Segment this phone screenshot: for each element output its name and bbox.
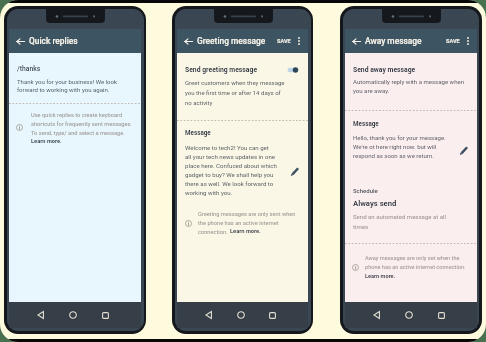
staticText: SAVE [446,38,460,45]
button[interactable]: Back [179,29,197,53]
staticText: Learn more. [230,228,261,235]
staticText: Always send [353,199,397,208]
button[interactable]: More options [461,29,474,53]
staticText: Learn more. [31,138,62,145]
button[interactable]: Recents [96,306,114,324]
button[interactable]: More options [292,29,305,53]
staticText: Learn more. [365,273,396,280]
button[interactable]: SAVE [444,35,462,48]
staticText: Use quick replies to create keyboard sho… [31,112,132,136]
button[interactable]: Back [11,29,29,53]
staticText: Schedule [353,187,378,194]
staticText: Greeting message [197,36,266,46]
staticText: Quick replies [29,36,78,46]
staticText: Send away message [353,66,416,74]
staticText: Away messages are only set when the phon… [365,255,466,270]
staticText: Greet customers when they message you th… [185,79,285,106]
button[interactable]: Recents [263,306,281,324]
button[interactable]: Home [64,306,82,324]
button[interactable]: Recents [432,306,450,324]
button[interactable]: Toggle greeting message [287,63,302,77]
button[interactable]: Home [232,306,250,324]
staticText: Welcome to tech2! You can get all your t… [185,144,277,197]
button[interactable]: Edit message [456,142,472,158]
button[interactable]: Edit message [287,163,303,179]
staticText: Greeting messages are only sent when the… [198,211,296,235]
button[interactable]: Back [32,306,50,324]
button[interactable]: Back [200,306,218,324]
staticText: SAVE [277,38,291,45]
staticText: Automatically reply with a message when … [353,78,465,95]
button[interactable]: SAVE [275,35,293,48]
button[interactable]: Back [368,306,386,324]
staticText: Send greeting message [185,66,258,74]
staticText: Away message [365,36,422,46]
button[interactable]: Home [400,306,418,324]
button[interactable]: Back [347,29,365,53]
staticText: Send an automated message at all times [353,213,446,230]
staticText: Hello, thank you for your message. We're… [353,134,446,160]
staticText: Message [353,120,379,127]
staticText: /thanks [17,65,41,73]
staticText: Thank you for your business! We look for… [17,78,118,93]
staticText: Message [185,129,211,136]
